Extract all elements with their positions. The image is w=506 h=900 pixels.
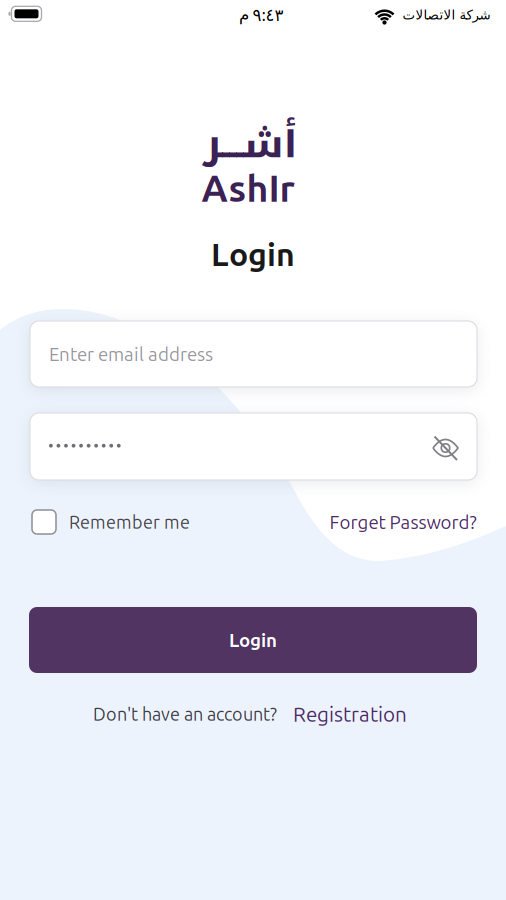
button[interactable]: Registration	[293, 702, 407, 726]
staticText: م	[238, 5, 248, 24]
staticText: شركة الاتصالات	[402, 7, 490, 23]
staticText: Enter email address	[49, 343, 213, 364]
staticText: ٩:٤٣	[252, 3, 283, 26]
staticText: Remember me	[69, 512, 190, 532]
button[interactable]: Password	[30, 413, 477, 480]
staticText: AshIr	[201, 167, 294, 209]
staticText: أشـــر	[203, 106, 297, 182]
button[interactable]	[423, 426, 467, 470]
staticText: Login	[229, 629, 277, 650]
button[interactable]: Remember me	[32, 510, 190, 534]
staticText: Don't have an account?	[93, 704, 277, 724]
staticText: Login	[211, 236, 295, 272]
button[interactable]: Forget Password?	[329, 511, 476, 532]
button[interactable]: Login	[29, 607, 477, 673]
staticText: Registration	[293, 702, 407, 726]
staticText: Forget Password?	[329, 511, 476, 532]
button[interactable]: Enter email address	[30, 321, 477, 387]
